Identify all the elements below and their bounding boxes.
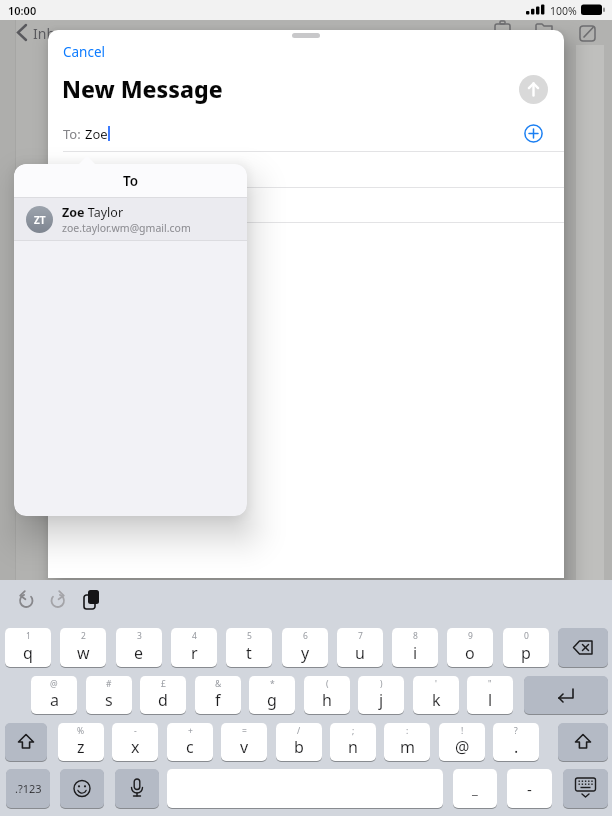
staticText: To bbox=[123, 172, 139, 190]
staticText: q bbox=[23, 642, 33, 664]
staticText: e bbox=[134, 642, 144, 664]
button[interactable]: £ bbox=[140, 676, 186, 714]
staticText: ZT bbox=[34, 213, 46, 227]
button[interactable]: ) bbox=[358, 676, 404, 714]
staticText: t bbox=[246, 642, 252, 664]
staticText: o bbox=[465, 642, 475, 664]
staticText: z bbox=[77, 736, 85, 758]
button[interactable]: " bbox=[467, 676, 513, 714]
staticText: j bbox=[379, 689, 384, 711]
staticText: New Message bbox=[62, 73, 223, 104]
button[interactable]: 5 bbox=[226, 628, 272, 667]
staticText: f bbox=[215, 689, 221, 711]
staticText: Zoe bbox=[85, 125, 108, 141]
button[interactable]: + bbox=[167, 723, 213, 761]
button[interactable]: 8 bbox=[392, 628, 438, 667]
staticText: 8 bbox=[413, 630, 418, 642]
button[interactable]: ZT bbox=[14, 198, 247, 240]
button[interactable]: 9 bbox=[447, 628, 493, 667]
button[interactable]: 7 bbox=[337, 628, 383, 667]
staticText: i bbox=[413, 642, 418, 664]
staticText: 100% bbox=[550, 4, 577, 18]
staticText: # bbox=[106, 678, 112, 690]
button[interactable]: ! bbox=[439, 723, 485, 761]
staticText: 6 bbox=[303, 630, 308, 642]
button[interactable]: = bbox=[221, 723, 267, 761]
staticText: Inbox bbox=[33, 24, 71, 43]
staticText: 2 bbox=[81, 630, 86, 642]
button[interactable] bbox=[558, 628, 608, 667]
staticText: @ bbox=[455, 736, 470, 758]
staticText: To: bbox=[63, 125, 85, 141]
staticText: b bbox=[294, 736, 304, 758]
staticText: zoe.taylor.wm@gmail.com bbox=[62, 221, 191, 235]
staticText: u bbox=[355, 642, 365, 664]
button[interactable] bbox=[5, 723, 47, 761]
staticText: % bbox=[77, 725, 85, 737]
button[interactable]: _ bbox=[453, 769, 497, 808]
staticText: 5 bbox=[247, 630, 252, 642]
staticText: £ bbox=[161, 678, 166, 690]
staticText: 0 bbox=[524, 630, 529, 642]
button[interactable] bbox=[115, 769, 159, 808]
staticText: w bbox=[77, 642, 90, 664]
button[interactable]: 4 bbox=[171, 628, 217, 667]
staticText: 9 bbox=[468, 630, 473, 642]
staticText: .?123 bbox=[15, 781, 42, 796]
button[interactable]: / bbox=[276, 723, 322, 761]
button[interactable]: ( bbox=[304, 676, 350, 714]
staticText: k bbox=[432, 689, 441, 711]
button[interactable]: ; bbox=[330, 723, 376, 761]
button[interactable]: * bbox=[249, 676, 295, 714]
staticText: / bbox=[297, 725, 301, 737]
button[interactable] bbox=[524, 676, 608, 714]
button[interactable] bbox=[60, 769, 104, 808]
staticText: m bbox=[400, 736, 415, 758]
button[interactable] bbox=[522, 122, 545, 145]
staticText: ; bbox=[352, 725, 355, 737]
button[interactable]: - bbox=[507, 769, 552, 808]
staticText: : bbox=[406, 725, 409, 737]
button[interactable]: # bbox=[86, 676, 132, 714]
button[interactable]: 3 bbox=[116, 628, 162, 667]
button[interactable]: 0 bbox=[503, 628, 549, 667]
button[interactable]: : bbox=[384, 723, 430, 761]
staticText: 10:00 bbox=[8, 3, 37, 18]
staticText: 4 bbox=[192, 630, 197, 642]
button[interactable]: & bbox=[195, 676, 241, 714]
staticText: " bbox=[488, 678, 492, 690]
staticText: r bbox=[191, 642, 198, 664]
staticText: p bbox=[521, 642, 531, 664]
button[interactable]: 6 bbox=[282, 628, 328, 667]
staticText: ( bbox=[326, 678, 329, 690]
staticText: y bbox=[301, 642, 310, 664]
staticText: ) bbox=[380, 678, 383, 690]
staticText: ? bbox=[514, 725, 518, 737]
staticText: v bbox=[240, 736, 249, 758]
button[interactable]: ' bbox=[413, 676, 459, 714]
button[interactable] bbox=[563, 769, 608, 808]
staticText: ' bbox=[435, 678, 437, 690]
staticText: s bbox=[105, 689, 113, 711]
button[interactable]: % bbox=[58, 723, 104, 761]
button[interactable]: Cancel bbox=[58, 38, 111, 66]
staticText: Cancel bbox=[63, 43, 106, 61]
staticText: @ bbox=[50, 678, 58, 690]
button[interactable]: .?123 bbox=[6, 769, 50, 808]
staticText: h bbox=[322, 689, 332, 711]
button[interactable]: ? bbox=[493, 723, 539, 761]
button[interactable] bbox=[558, 723, 608, 761]
button[interactable]: @ bbox=[31, 676, 77, 714]
staticText: Zoe Taylor bbox=[62, 204, 124, 221]
button[interactable]: - bbox=[112, 723, 158, 761]
button[interactable]: 2 bbox=[60, 628, 106, 667]
staticText: - bbox=[527, 779, 532, 799]
button[interactable] bbox=[519, 75, 548, 104]
staticText: - bbox=[134, 725, 137, 737]
staticText: + bbox=[188, 725, 193, 737]
staticText: n bbox=[348, 736, 358, 758]
staticText: l bbox=[488, 689, 493, 711]
button[interactable]: 1 bbox=[5, 628, 51, 667]
staticText: d bbox=[158, 689, 168, 711]
